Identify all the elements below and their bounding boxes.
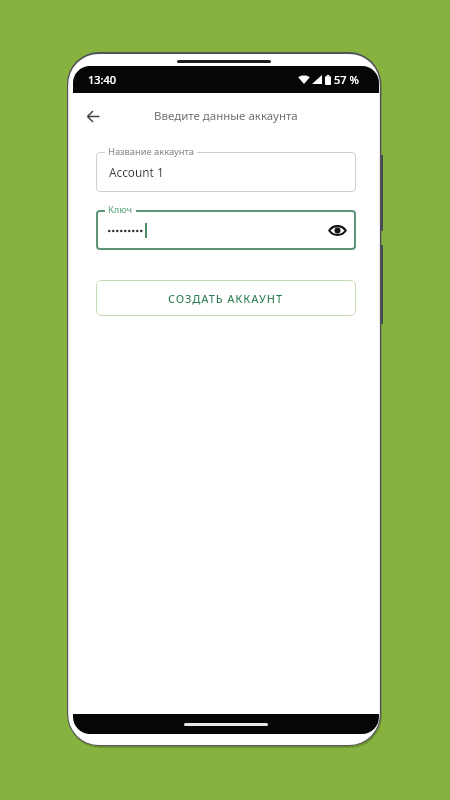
button[interactable]: Ключ bbox=[96, 210, 356, 250]
staticText: Account 1 bbox=[109, 164, 164, 180]
staticText: Название аккаунта bbox=[108, 145, 194, 158]
button[interactable]: Название аккаунта bbox=[96, 152, 356, 192]
staticText: СОЗДАТЬ АККАУНТ bbox=[168, 291, 284, 306]
button[interactable]: СОЗДАТЬ АККАУНТ bbox=[96, 280, 356, 316]
staticText: Введите данные аккаунта bbox=[154, 108, 298, 124]
button[interactable]: Show password bbox=[325, 218, 349, 242]
staticText: Ключ bbox=[108, 203, 133, 216]
staticText: 57 % bbox=[334, 72, 359, 87]
button[interactable]: Back bbox=[77, 100, 109, 132]
staticText: 13:40 bbox=[88, 72, 117, 87]
